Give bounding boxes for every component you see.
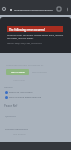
staticText: Sign in again: [11, 71, 25, 74]
button[interactable]: Tabs: [56, 6, 62, 12]
button[interactable]: Site information: [1, 6, 7, 12]
staticText: The following error occurred: [9, 28, 45, 31]
button[interactable]: More options: [64, 6, 70, 12]
staticText: Send us some emails with the: [9, 96, 42, 99]
staticText: Questions: [5, 115, 16, 118]
staticText: Possible Responses: [5, 127, 28, 130]
staticText: with Duo/SSO: [32, 71, 47, 74]
staticText: Peace Ref: [4, 104, 18, 108]
staticText: Talk directly: [13, 133, 26, 136]
staticText: Need help?: [13, 79, 26, 82]
staticText: Options: [4, 86, 13, 89]
staticText: Security error occurred. Please press ba…: [7, 33, 64, 36]
staticText: onlineforums.com/forum/thread: [14, 8, 53, 11]
staticText: Looks like you are not signed in.: [6, 63, 44, 66]
button[interactable]: Return to Your Forum: [5, 91, 33, 94]
button[interactable]: Sign in again: [6, 69, 29, 75]
staticText: Return to Your Forum: [9, 91, 33, 94]
button[interactable]: Send us some emails with the: [5, 96, 42, 99]
button[interactable]: Need help?: [13, 79, 26, 82]
button[interactable]: Talk directly: [13, 133, 26, 136]
staticText: the page, and try again.: [7, 36, 34, 39]
staticText: reason: ERR[1903] CSRF_MISMATCH: [7, 42, 42, 45]
